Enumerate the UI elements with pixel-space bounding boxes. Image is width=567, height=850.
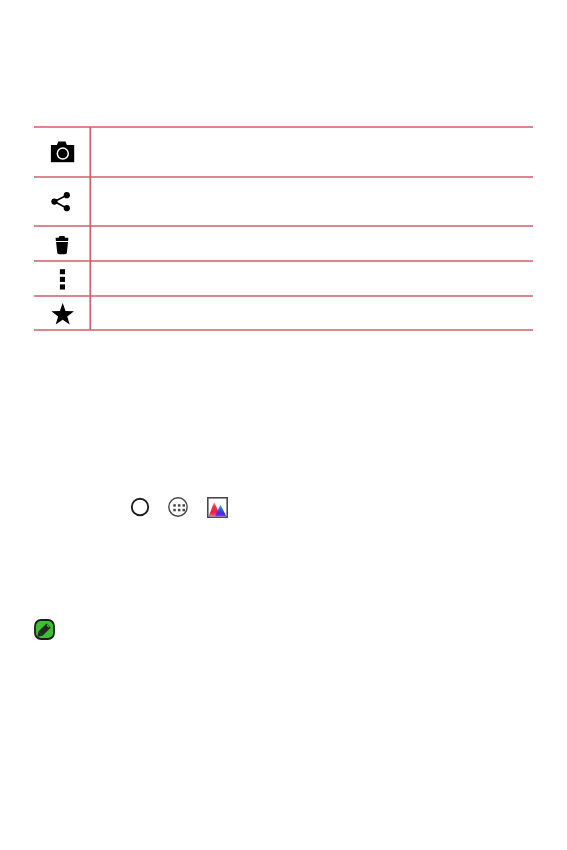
button[interactable]: All apps (168, 497, 188, 517)
button[interactable]: More options (58, 267, 84, 293)
button[interactable]: Delete (52, 234, 78, 260)
button[interactable]: Home (130, 497, 150, 517)
button[interactable]: Notes (34, 619, 55, 640)
button[interactable]: Camera (50, 140, 76, 166)
button[interactable]: Share (50, 190, 76, 216)
button[interactable]: Favorite (50, 301, 76, 327)
button[interactable]: Gallery (207, 497, 228, 518)
